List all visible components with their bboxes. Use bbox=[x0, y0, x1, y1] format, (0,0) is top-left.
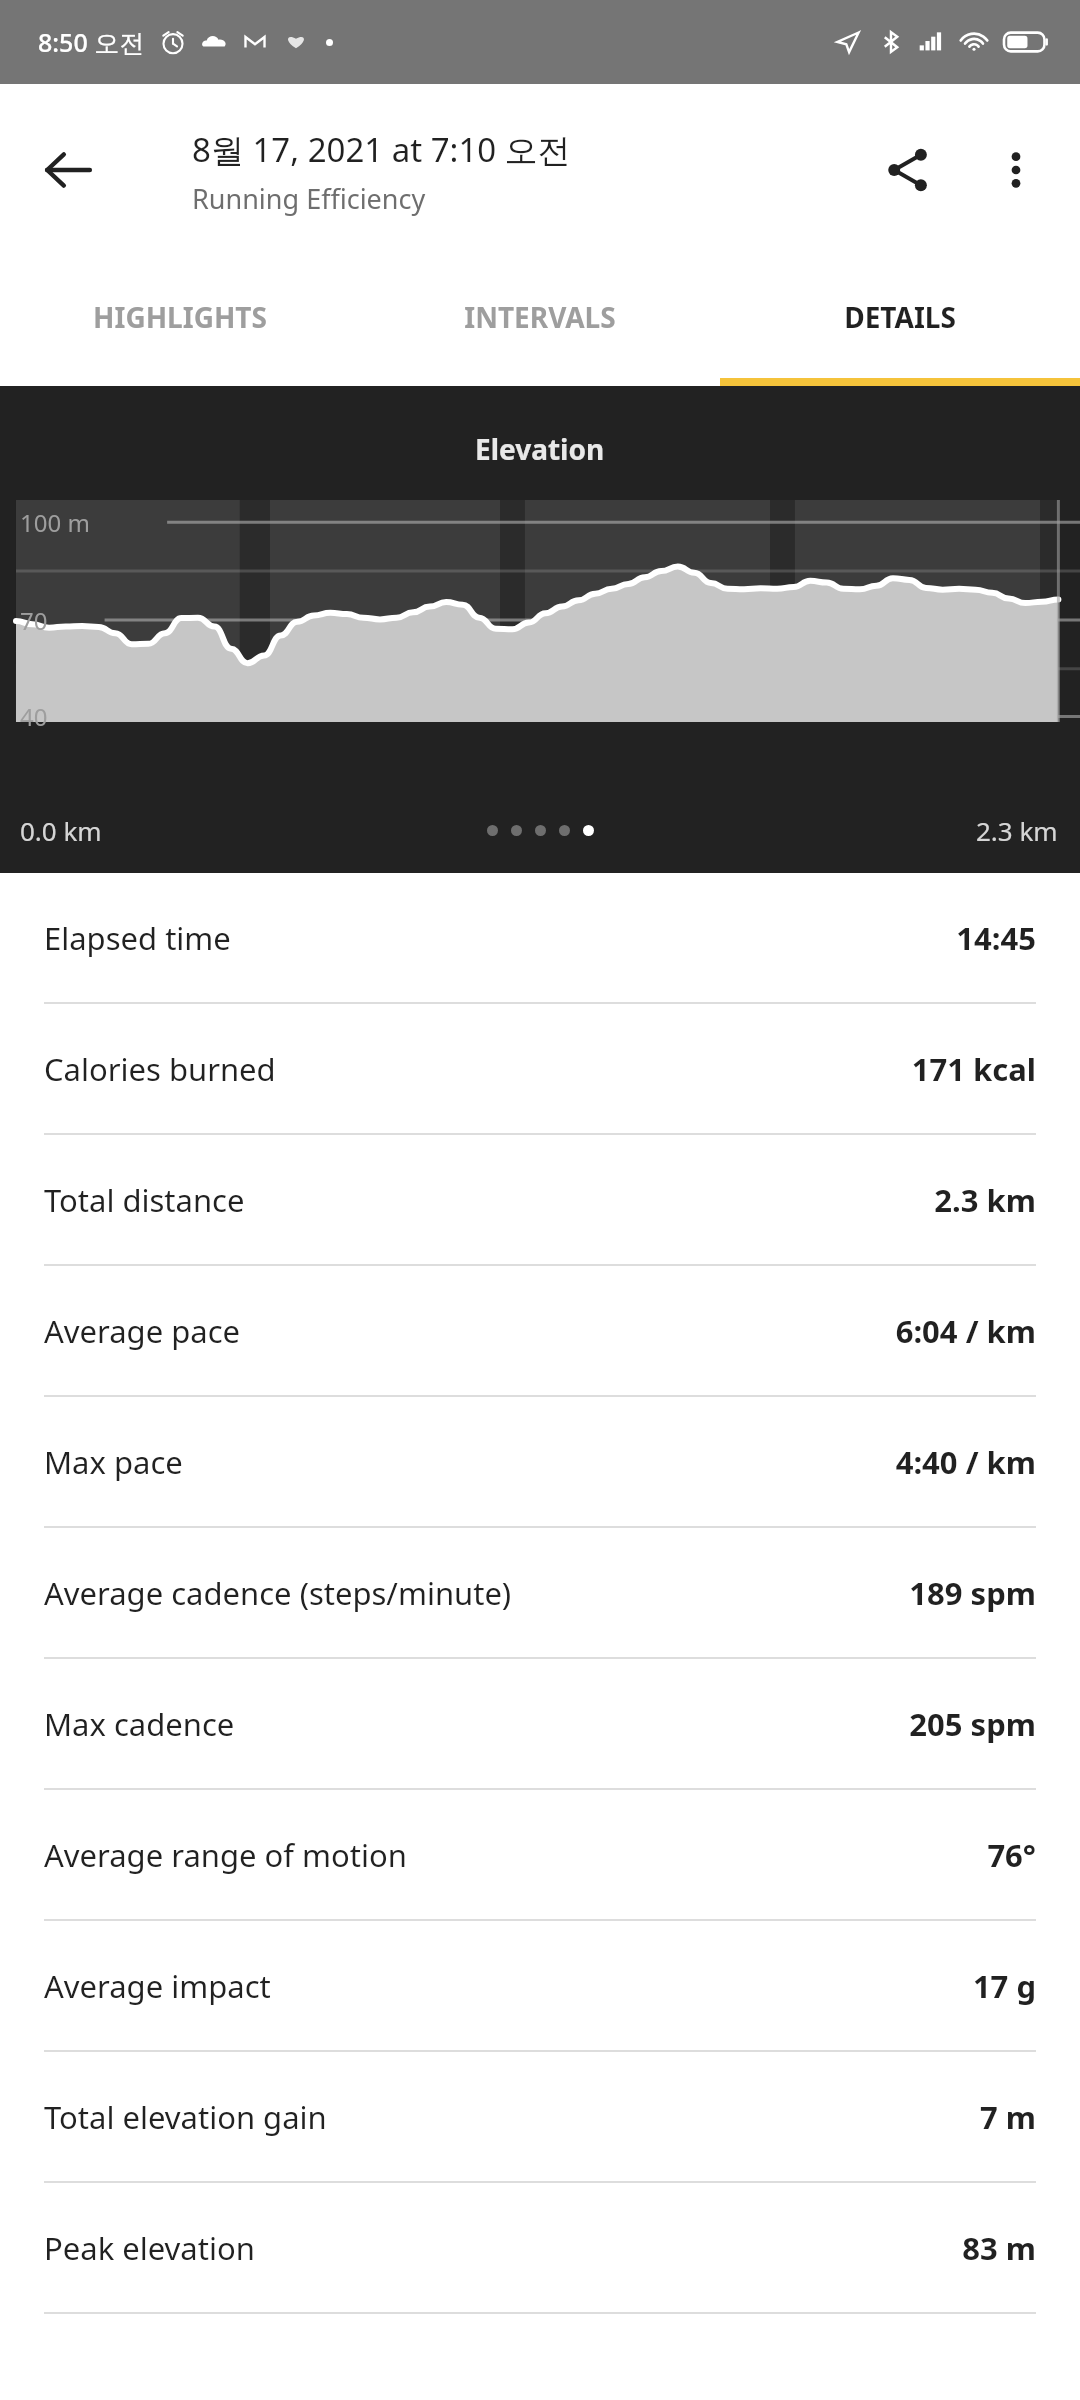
staticText: 100 m bbox=[20, 506, 90, 539]
button[interactable]: More options bbox=[970, 124, 1062, 216]
staticText: Average pace bbox=[44, 1310, 895, 1352]
button[interactable]: Back bbox=[22, 124, 114, 216]
staticText: Total distance bbox=[44, 1179, 934, 1221]
button[interactable]: Page 5 bbox=[583, 825, 594, 836]
staticText: 76° bbox=[987, 1834, 1036, 1876]
staticText: 7 m bbox=[979, 2096, 1036, 2138]
staticText: 2.3 km bbox=[934, 1179, 1036, 1221]
staticText: 83 m bbox=[962, 2227, 1036, 2269]
button[interactable]: Max cadence bbox=[0, 1659, 1080, 1790]
staticText: 6:04 / km bbox=[895, 1310, 1036, 1352]
button[interactable]: Page 1 bbox=[487, 825, 498, 836]
button[interactable]: HIGHLIGHTS bbox=[0, 256, 360, 378]
button[interactable]: DETAILS bbox=[720, 256, 1080, 378]
button[interactable]: Page 4 bbox=[559, 825, 570, 836]
staticText: Calories burned bbox=[44, 1048, 911, 1090]
staticText: HIGHLIGHTS bbox=[93, 298, 267, 336]
staticText: 4:40 / km bbox=[895, 1441, 1036, 1483]
button[interactable]: Page 2 bbox=[511, 825, 522, 836]
staticText: Average cadence (steps/minute) bbox=[44, 1572, 909, 1614]
staticText: 189 spm bbox=[909, 1572, 1036, 1614]
staticText: Max pace bbox=[44, 1441, 895, 1483]
staticText: Elapsed time bbox=[44, 917, 956, 959]
button[interactable]: Average impact bbox=[0, 1921, 1080, 2052]
button[interactable]: Total distance bbox=[0, 1135, 1080, 1266]
staticText: DETAILS bbox=[844, 298, 956, 336]
staticText: 70 bbox=[20, 604, 48, 637]
staticText: 205 spm bbox=[909, 1703, 1036, 1745]
staticText: Total elevation gain bbox=[44, 2096, 979, 2138]
button[interactable]: INTERVALS bbox=[360, 256, 720, 378]
staticText: INTERVALS bbox=[464, 298, 616, 336]
button[interactable]: Total elevation gain bbox=[0, 2052, 1080, 2183]
staticText: 171 kcal bbox=[911, 1048, 1036, 1090]
button[interactable]: Page 3 bbox=[535, 825, 546, 836]
staticText: 8:50 오전 bbox=[38, 25, 145, 59]
staticText: Max cadence bbox=[44, 1703, 909, 1745]
staticText: 14:45 bbox=[956, 917, 1036, 959]
staticText: 8월 17, 2021 at 7:10 오전 bbox=[192, 127, 571, 172]
button[interactable]: Peak elevation bbox=[0, 2183, 1080, 2314]
button[interactable]: Average cadence (steps/minute) bbox=[0, 1528, 1080, 1659]
staticText: 0.0 km bbox=[20, 813, 102, 848]
staticText: 40 bbox=[20, 700, 48, 733]
button[interactable]: Max pace bbox=[0, 1397, 1080, 1528]
staticText: Average range of motion bbox=[44, 1834, 987, 1876]
button[interactable]: Average range of motion bbox=[0, 1790, 1080, 1921]
button[interactable]: Elapsed time bbox=[0, 873, 1080, 1004]
button[interactable]: Share bbox=[862, 124, 954, 216]
staticText: Elevation bbox=[475, 430, 605, 468]
staticText: Peak elevation bbox=[44, 2227, 962, 2269]
button[interactable]: Calories burned bbox=[0, 1004, 1080, 1135]
staticText: 17 g bbox=[972, 1965, 1036, 2007]
staticText: Average impact bbox=[44, 1965, 972, 2007]
button[interactable]: Average pace bbox=[0, 1266, 1080, 1397]
staticText: Running Efficiency bbox=[192, 180, 426, 217]
staticText: 2.3 km bbox=[976, 813, 1058, 848]
